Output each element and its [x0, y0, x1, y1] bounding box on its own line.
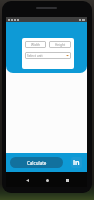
staticText: Calculate	[27, 160, 47, 166]
button[interactable]: Calculate	[10, 157, 63, 168]
button[interactable]: Back	[23, 176, 31, 184]
button[interactable]: Select unit	[25, 52, 71, 59]
button[interactable]: Recents	[63, 176, 71, 184]
button[interactable]: Home	[43, 176, 51, 184]
button[interactable]: Width	[25, 41, 46, 48]
staticText: Height	[55, 43, 66, 47]
staticText: in	[73, 158, 80, 168]
staticText: Width	[31, 43, 40, 47]
button[interactable]: LinkedIn	[71, 157, 82, 168]
staticText: Select unit	[27, 54, 43, 58]
button[interactable]: Height	[49, 41, 71, 48]
